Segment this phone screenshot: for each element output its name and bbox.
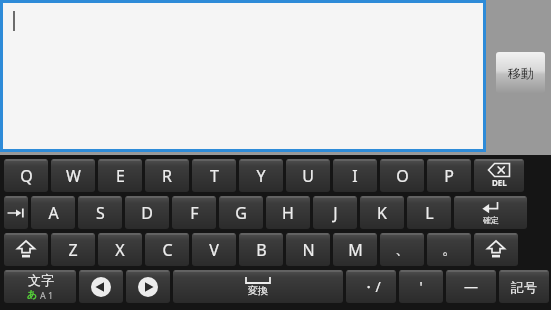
staticText: J — [333, 202, 338, 224]
button[interactable]: N — [286, 233, 330, 266]
staticText: Y — [256, 165, 266, 187]
button[interactable]: O — [380, 159, 424, 192]
button[interactable]: 。 — [427, 233, 471, 266]
button[interactable]: Input mode — [4, 270, 76, 303]
staticText: R — [162, 165, 172, 187]
staticText: T — [210, 165, 219, 187]
staticText: あ — [27, 288, 38, 301]
staticText: 変換 — [248, 284, 268, 297]
button[interactable]: Y — [239, 159, 283, 192]
button[interactable]: V — [192, 233, 236, 266]
button[interactable]: Left — [79, 270, 123, 303]
staticText: 記号 — [511, 279, 537, 295]
staticText: N — [302, 239, 315, 261]
staticText: B — [256, 239, 267, 261]
staticText: I — [352, 165, 358, 187]
staticText: Z — [68, 239, 78, 261]
staticText: V — [209, 239, 219, 261]
button[interactable]: Z — [51, 233, 95, 266]
staticText: U — [302, 165, 314, 187]
button[interactable]: W — [51, 159, 95, 192]
staticText: 。 — [442, 240, 457, 259]
button[interactable]: Delete — [474, 159, 524, 192]
button[interactable]: J — [313, 196, 357, 229]
button[interactable]: E — [98, 159, 142, 192]
button[interactable] — [3, 3, 483, 149]
button[interactable]: H — [266, 196, 310, 229]
staticText: X — [115, 239, 125, 261]
staticText: 移動 — [508, 65, 534, 81]
staticText: D — [141, 202, 153, 224]
staticText: F — [190, 202, 199, 224]
staticText: A — [40, 289, 46, 301]
staticText: DEL — [492, 177, 507, 188]
staticText: L — [425, 202, 434, 224]
button[interactable]: Tab — [4, 196, 28, 229]
staticText: 、 — [395, 240, 410, 259]
button[interactable]: P — [427, 159, 471, 192]
button[interactable]: L — [407, 196, 451, 229]
staticText: G — [235, 202, 247, 224]
button[interactable]: S — [78, 196, 122, 229]
staticText: H — [282, 202, 294, 224]
button[interactable]: 、 — [380, 233, 424, 266]
button[interactable]: 移動 — [496, 52, 545, 93]
staticText: P — [444, 165, 454, 187]
staticText: W — [66, 165, 81, 187]
staticText: ― — [464, 277, 478, 296]
button[interactable]: F — [172, 196, 216, 229]
button[interactable]: Shift — [474, 233, 518, 266]
staticText: M — [348, 239, 363, 261]
button[interactable]: R — [145, 159, 189, 192]
button[interactable]: Shift — [4, 233, 48, 266]
button[interactable]: Right — [126, 270, 170, 303]
staticText: ・/ — [361, 277, 381, 296]
button[interactable]: Space / convert — [173, 270, 343, 303]
button[interactable]: Enter — [454, 196, 527, 229]
button[interactable]: M — [333, 233, 377, 266]
button[interactable]: I — [333, 159, 377, 192]
button[interactable]: U — [286, 159, 330, 192]
button[interactable]: 記号 — [499, 270, 549, 303]
button[interactable]: ― — [446, 270, 496, 303]
staticText: K — [377, 202, 387, 224]
staticText: 1 — [48, 289, 54, 301]
staticText: O — [396, 165, 409, 187]
button[interactable]: D — [125, 196, 169, 229]
button[interactable]: A — [31, 196, 75, 229]
button[interactable]: K — [360, 196, 404, 229]
staticText: S — [96, 202, 105, 224]
button[interactable]: ・/ — [346, 270, 396, 303]
button[interactable]: Q — [4, 159, 48, 192]
staticText: 確定 — [483, 215, 499, 225]
staticText: 文字 — [28, 272, 54, 288]
button[interactable]: C — [145, 233, 189, 266]
button[interactable]: B — [239, 233, 283, 266]
button[interactable]: ' — [399, 270, 443, 303]
staticText: E — [116, 165, 125, 187]
staticText: C — [162, 239, 173, 261]
staticText: A — [48, 202, 59, 224]
button[interactable]: X — [98, 233, 142, 266]
staticText: Q — [20, 165, 33, 187]
staticText: ' — [419, 277, 423, 296]
button[interactable]: T — [192, 159, 236, 192]
button[interactable]: G — [219, 196, 263, 229]
